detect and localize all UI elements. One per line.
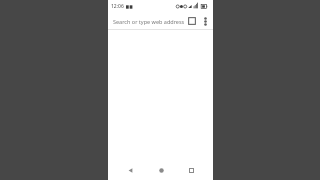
button[interactable]: Recent apps	[183, 162, 199, 178]
button[interactable]: Search or type web address	[113, 13, 185, 29]
button[interactable]: Back	[122, 162, 138, 178]
button[interactable]: Tabs	[185, 14, 199, 28]
button[interactable]: Home	[153, 162, 169, 178]
staticText: Search or type web address	[113, 18, 185, 25]
staticText: 12:06	[111, 3, 124, 10]
button[interactable]: More options	[199, 15, 211, 27]
